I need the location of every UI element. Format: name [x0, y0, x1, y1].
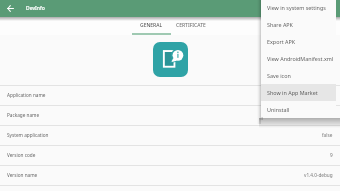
- button[interactable]: CERTIFICATE: [171, 16, 210, 34]
- staticText: Uninstall: [267, 106, 290, 113]
- staticText: CERTIFICATE: [176, 22, 206, 29]
- staticText: View in system settings: [267, 4, 326, 11]
- button[interactable]: Version code: [0, 145, 340, 165]
- button[interactable]: View AndroidManifest.xml: [261, 50, 336, 67]
- button[interactable]: GENERAL: [132, 16, 171, 34]
- button[interactable]: View in system settings: [261, 0, 336, 16]
- button[interactable]: Save icon: [261, 67, 336, 84]
- staticText: System application: [7, 132, 49, 138]
- staticText: Show in App Market: [267, 89, 318, 96]
- button[interactable]: Back: [0, 0, 20, 17]
- staticText: Application name: [7, 92, 46, 98]
- button[interactable]: System application: [0, 125, 340, 145]
- staticText: Share APK: [267, 21, 293, 28]
- staticText: Version name: [7, 172, 38, 178]
- staticText: Save icon: [267, 72, 291, 79]
- button[interactable]: Share APK: [261, 16, 336, 33]
- staticText: Export APK: [267, 38, 296, 45]
- button[interactable]: Package name: [0, 105, 340, 125]
- staticText: v1.4.0-debug: [304, 172, 333, 178]
- button[interactable]: Uninstall: [261, 101, 336, 117]
- button[interactable]: Export APK: [261, 33, 336, 50]
- button[interactable]: Application name: [0, 85, 340, 105]
- button[interactable]: Show in App Market: [261, 84, 336, 101]
- staticText: DevInfo: [26, 5, 45, 12]
- staticText: Version code: [7, 152, 36, 158]
- staticText: View AndroidManifest.xml: [267, 55, 334, 62]
- button[interactable]: Version name: [0, 165, 340, 185]
- staticText: Package name: [7, 112, 40, 118]
- staticText: 9: [330, 152, 333, 158]
- staticText: false: [322, 132, 333, 138]
- staticText: GENERAL: [140, 22, 163, 29]
